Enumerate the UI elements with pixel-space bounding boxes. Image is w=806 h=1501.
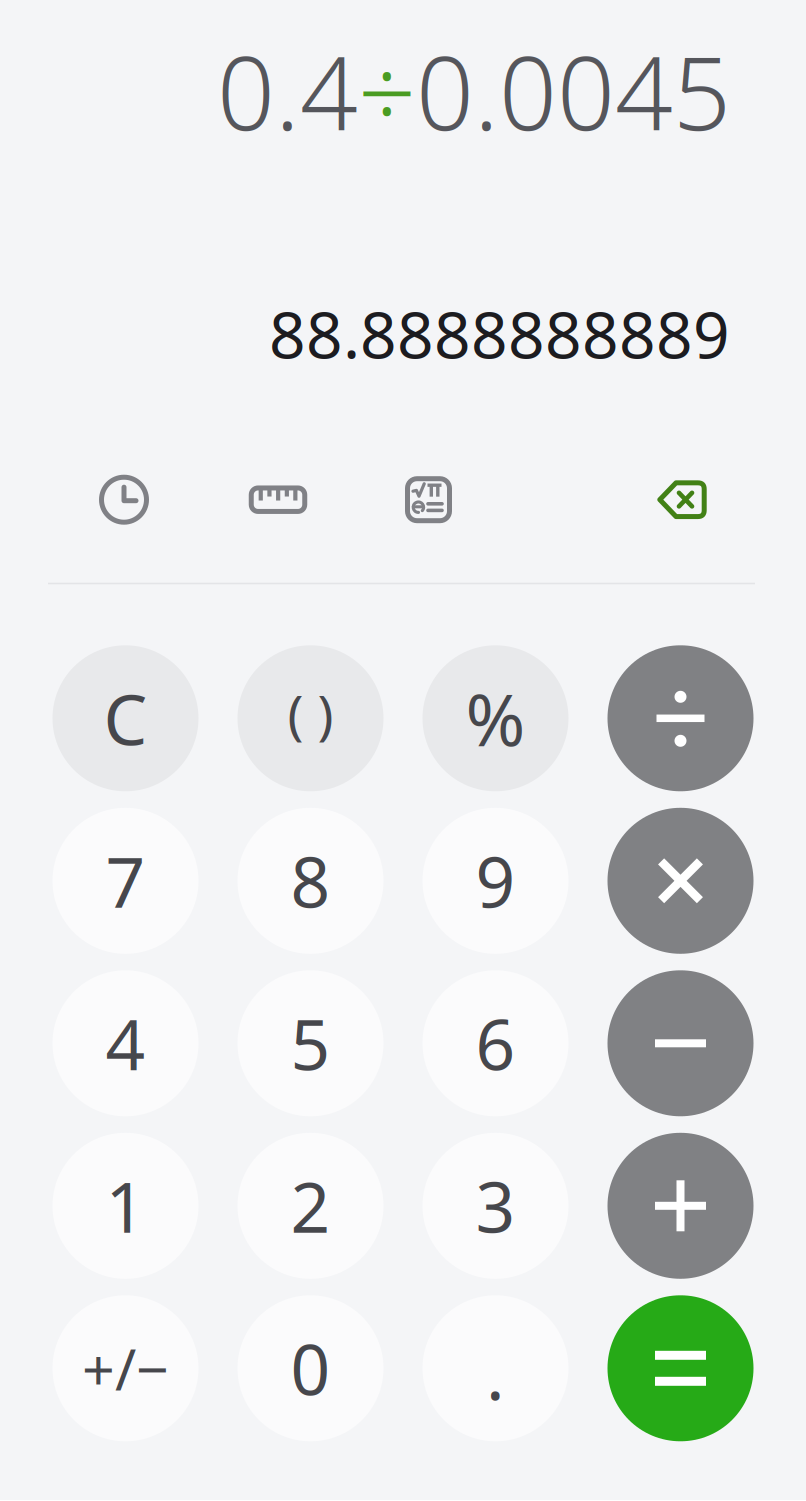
button[interactable]: Subtract xyxy=(607,970,753,1116)
staticText: 3 xyxy=(475,1160,515,1252)
button[interactable]: 2 xyxy=(237,1133,383,1279)
staticText: 5 xyxy=(290,997,330,1089)
button[interactable]: . xyxy=(422,1295,568,1441)
button[interactable]: Scientific keypad xyxy=(400,473,456,527)
button[interactable]: Multiply xyxy=(607,808,753,954)
button[interactable]: Equals xyxy=(607,1295,753,1441)
button[interactable]: ( ) xyxy=(237,645,383,791)
button[interactable]: 3 xyxy=(422,1133,568,1279)
staticText: 6 xyxy=(475,997,515,1089)
button[interactable]: 5 xyxy=(237,970,383,1116)
button[interactable]: +/− xyxy=(52,1295,198,1441)
staticText: 9 xyxy=(475,835,515,927)
staticText: C xyxy=(103,672,147,764)
button[interactable]: % xyxy=(422,645,568,791)
staticText: . xyxy=(486,1327,505,1419)
button[interactable]: 9 xyxy=(422,808,568,954)
staticText: 88.8888888889 xyxy=(269,291,730,376)
button[interactable]: 6 xyxy=(422,970,568,1116)
staticText: 2 xyxy=(290,1160,330,1252)
button[interactable]: 7 xyxy=(52,808,198,954)
button[interactable]: Unit converter xyxy=(248,473,308,527)
staticText: 0 xyxy=(290,1322,330,1414)
button[interactable]: C xyxy=(52,645,198,791)
button[interactable]: Add xyxy=(607,1133,753,1279)
button[interactable]: Delete xyxy=(654,473,710,527)
staticText: % xyxy=(465,670,525,766)
button[interactable]: 4 xyxy=(52,970,198,1116)
staticText: ( ) xyxy=(287,678,333,749)
staticText: 7 xyxy=(105,835,145,927)
button[interactable]: 1 xyxy=(52,1133,198,1279)
button[interactable]: History xyxy=(96,473,152,527)
button[interactable]: 0 xyxy=(237,1295,383,1441)
staticText: ÷ xyxy=(358,24,416,158)
staticText: 0.0045 xyxy=(416,24,731,158)
staticText: 0.4 xyxy=(217,24,358,158)
staticText: 8 xyxy=(290,835,330,927)
staticText: 4 xyxy=(105,997,145,1089)
button[interactable]: Divide xyxy=(607,645,753,791)
button[interactable]: 8 xyxy=(237,808,383,954)
staticText: 1 xyxy=(105,1160,145,1252)
staticText: +/− xyxy=(82,1330,169,1406)
